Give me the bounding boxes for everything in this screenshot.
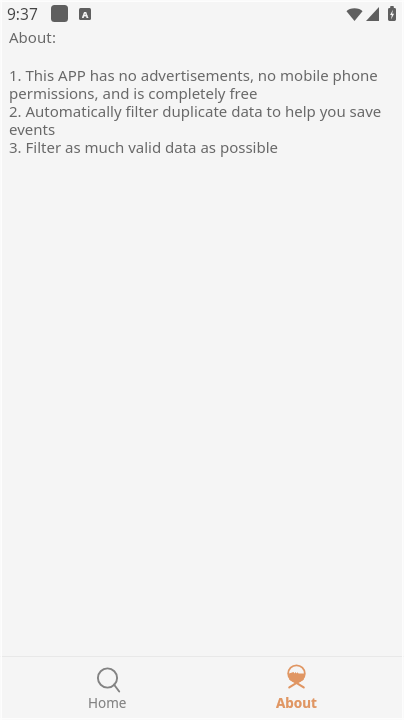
other: Home — [95, 666, 120, 691]
staticText: 9:37 — [7, 3, 38, 24]
staticText: 1. This APP has no advertisements, no mo… — [9, 67, 395, 157]
staticText: : — [52, 29, 57, 47]
staticText: About — [276, 694, 317, 712]
other: About — [284, 666, 309, 691]
staticText: About — [9, 29, 52, 47]
button[interactable]: Home — [13, 657, 202, 720]
button[interactable]: About — [202, 657, 391, 720]
staticText: A — [82, 8, 89, 20]
staticText: Home — [88, 694, 127, 712]
